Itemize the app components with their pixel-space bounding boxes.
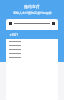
staticText: ￥0.01 (9, 33, 18, 37)
staticText: 微信支付 (24, 4, 40, 9)
staticText: 请输入支付密码完成付款操作 (13, 11, 52, 15)
